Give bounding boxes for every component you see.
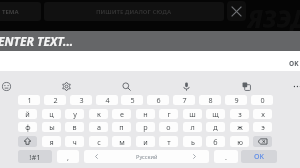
button[interactable]: и — [136, 136, 155, 147]
button[interactable]: н — [136, 109, 155, 119]
button[interactable]: 5 — [121, 95, 143, 105]
staticText: щ — [212, 109, 219, 119]
button[interactable]: ш — [183, 109, 202, 119]
staticText: с — [97, 137, 101, 147]
button[interactable]: 9 — [225, 95, 247, 105]
button[interactable]: ь — [183, 136, 202, 147]
button[interactable]: г — [159, 109, 178, 119]
button[interactable]: Keyboard settings — [57, 77, 75, 95]
staticText: о — [166, 122, 171, 132]
staticText: з — [238, 109, 242, 119]
button[interactable]: Stickers — [237, 77, 255, 95]
staticText: ТЕМА — [2, 8, 19, 16]
button[interactable]: щ — [206, 109, 225, 119]
staticText: ч — [72, 137, 77, 147]
staticText: г — [167, 109, 171, 119]
staticText: , — [67, 152, 69, 162]
staticText: е — [120, 109, 124, 119]
staticText: 6 — [156, 95, 161, 105]
button[interactable]: Русский — [84, 150, 209, 163]
button[interactable]: б — [206, 136, 225, 147]
staticText: л — [190, 122, 195, 132]
staticText: м — [119, 137, 125, 147]
button[interactable]: 3 — [70, 95, 92, 105]
staticText: в — [72, 122, 77, 132]
button[interactable]: д — [206, 122, 225, 132]
button[interactable]: э — [253, 122, 272, 132]
button[interactable]: х — [253, 109, 272, 119]
button[interactable]: р — [136, 122, 155, 132]
staticText: 8 — [208, 95, 213, 105]
staticText: 5 — [130, 95, 135, 105]
staticText: н — [143, 109, 148, 119]
staticText: э — [261, 122, 265, 132]
staticText: 9 — [234, 95, 239, 105]
staticText: б — [213, 137, 218, 147]
button[interactable]: . — [214, 150, 238, 163]
button[interactable] — [18, 136, 37, 147]
button[interactable]: з — [230, 109, 249, 119]
staticText: 1 — [27, 95, 32, 105]
staticText: ПИШИТЕ ДИАЛОГ СЮДА — [96, 8, 172, 16]
staticText: 7 — [182, 95, 187, 105]
staticText: т — [167, 137, 171, 147]
staticText: 2 — [53, 95, 58, 105]
staticText: Русский — [136, 153, 158, 161]
staticText: ы — [49, 122, 55, 132]
button[interactable]: й — [18, 109, 37, 119]
button[interactable]: е — [112, 109, 131, 119]
button[interactable]: я — [42, 136, 61, 147]
button[interactable] — [253, 136, 272, 147]
button[interactable]: т — [159, 136, 178, 147]
staticText: ц — [49, 109, 54, 119]
other: Backspace — [253, 136, 272, 147]
button[interactable]: м — [112, 136, 131, 147]
button[interactable]: ТЕМА — [0, 2, 41, 21]
staticText: и — [143, 137, 148, 147]
button[interactable]: 7 — [173, 95, 195, 105]
button[interactable]: ю — [230, 136, 249, 147]
staticText: х — [261, 109, 265, 119]
button[interactable]: ц — [42, 109, 61, 119]
other: Shift — [18, 136, 37, 147]
button[interactable]: ч — [65, 136, 84, 147]
button[interactable]: л — [183, 122, 202, 132]
staticText: р — [143, 122, 148, 132]
button[interactable]: Search — [117, 77, 135, 95]
button[interactable]: ENTER TEXT... — [0, 31, 300, 51]
staticText: ф — [25, 122, 31, 132]
staticText: я — [49, 137, 54, 147]
button[interactable]: , — [57, 150, 79, 163]
button[interactable]: ПИШИТЕ ДИАЛОГ СЮДА — [44, 2, 224, 21]
button[interactable]: у — [65, 109, 84, 119]
button[interactable]: OK — [289, 59, 300, 68]
button[interactable]: 4 — [96, 95, 118, 105]
button[interactable]: 1 — [18, 95, 40, 105]
button[interactable]: п — [112, 122, 131, 132]
button[interactable]: Emoji — [0, 77, 15, 95]
button[interactable]: ы — [42, 122, 61, 132]
staticText: а — [97, 122, 101, 132]
staticText: ю — [237, 137, 243, 147]
button[interactable]: с — [89, 136, 108, 147]
staticText: ЯЗЭД — [247, 2, 300, 33]
staticText: 0 — [260, 95, 265, 105]
button[interactable]: ж — [230, 122, 249, 132]
button[interactable]: в — [65, 122, 84, 132]
button[interactable]: 6 — [147, 95, 169, 105]
button[interactable]: 0 — [251, 95, 273, 105]
button[interactable]: 2 — [44, 95, 66, 105]
button[interactable]: Voice input — [177, 77, 195, 95]
button[interactable]: Close — [227, 1, 246, 21]
button[interactable]: 8 — [199, 95, 221, 105]
button[interactable]: о — [159, 122, 178, 132]
button[interactable]: More options — [288, 77, 300, 95]
button[interactable]: !#1 — [18, 150, 52, 163]
button[interactable]: OK — [241, 150, 277, 163]
button[interactable]: а — [89, 122, 108, 132]
staticText: д — [213, 122, 218, 132]
staticText: к — [97, 109, 101, 119]
button[interactable]: к — [89, 109, 108, 119]
button[interactable]: ф — [18, 122, 37, 132]
staticText: ENTER TEXT... — [0, 33, 74, 49]
